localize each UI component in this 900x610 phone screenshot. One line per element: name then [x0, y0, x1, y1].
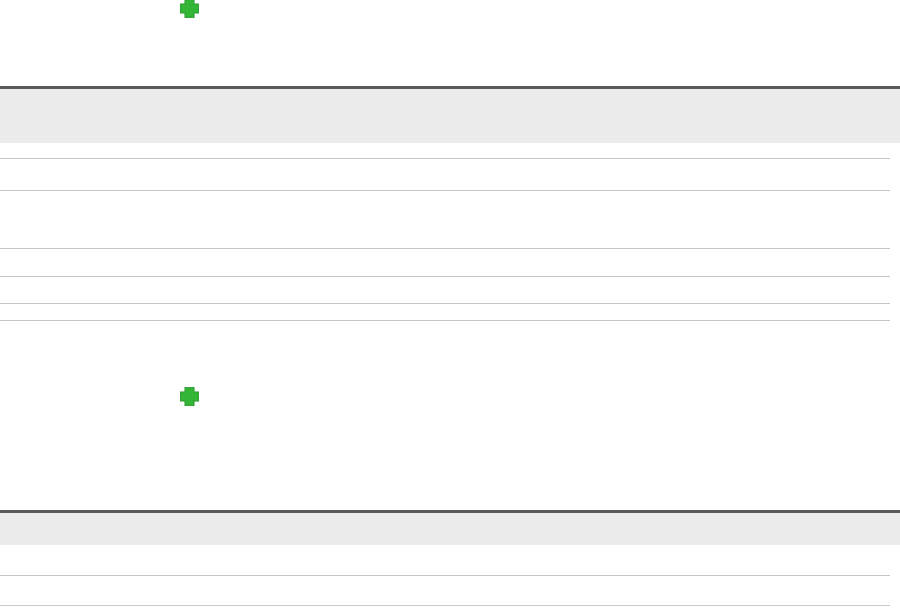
button[interactable] — [0, 277, 900, 304]
button[interactable] — [0, 159, 900, 191]
button[interactable] — [0, 304, 900, 321]
button[interactable] — [0, 576, 900, 606]
button[interactable] — [0, 249, 900, 277]
button[interactable]: Add row — [179, 386, 200, 407]
button[interactable]: Add row — [179, 0, 200, 19]
button[interactable] — [0, 545, 900, 576]
button[interactable] — [0, 143, 900, 159]
button[interactable] — [0, 191, 900, 249]
